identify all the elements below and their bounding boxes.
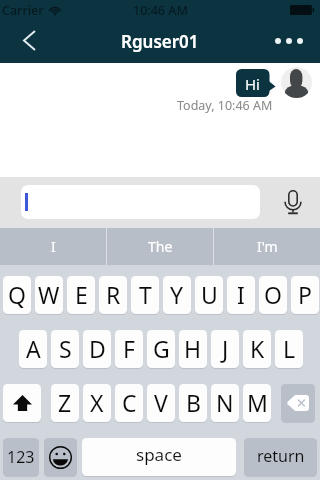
button[interactable]: L	[275, 330, 303, 368]
button[interactable]: I	[0, 228, 106, 265]
button[interactable]: More options	[266, 20, 320, 63]
button[interactable]: P	[291, 276, 319, 314]
staticText: I	[237, 279, 245, 310]
button[interactable]: The	[107, 228, 213, 265]
staticText: T	[139, 279, 152, 310]
staticText: 123	[7, 446, 35, 468]
staticText: B	[186, 387, 201, 418]
button[interactable]: Back	[0, 20, 52, 63]
button[interactable]: F	[115, 330, 143, 368]
staticText: The	[148, 237, 173, 256]
staticText: E	[75, 279, 88, 310]
button[interactable]: V	[147, 384, 175, 422]
staticText: O	[264, 279, 282, 310]
staticText: Y	[170, 279, 184, 310]
button[interactable]: I'm	[214, 228, 320, 265]
button[interactable]: G	[147, 330, 175, 368]
staticText: I'm	[257, 237, 278, 256]
button[interactable]: I	[227, 276, 255, 314]
button[interactable]: H	[179, 330, 207, 368]
staticText: space	[136, 443, 182, 466]
staticText: U	[201, 279, 218, 310]
staticText: 10:46 AM	[133, 2, 188, 19]
button[interactable]: space	[82, 438, 236, 476]
button[interactable]: Y	[163, 276, 191, 314]
button[interactable]: Backspace	[281, 384, 315, 422]
staticText: S	[59, 333, 72, 364]
button[interactable]: T	[131, 276, 159, 314]
button[interactable]: U	[195, 276, 223, 314]
staticText: H	[184, 333, 202, 364]
staticText: return	[257, 445, 305, 467]
button[interactable]: J	[211, 330, 239, 368]
button[interactable]: B	[179, 384, 207, 422]
button[interactable]: M	[243, 384, 271, 422]
staticText: K	[250, 333, 265, 364]
staticText: Q	[8, 279, 26, 310]
staticText: R	[106, 279, 121, 310]
button[interactable]: Q	[3, 276, 31, 314]
button[interactable]: N	[211, 384, 239, 422]
staticText: J	[222, 333, 229, 364]
staticText: N	[216, 387, 234, 418]
button[interactable]: R	[99, 276, 127, 314]
staticText: F	[123, 333, 135, 364]
button[interactable]: return	[244, 438, 317, 476]
staticText: D	[89, 333, 106, 364]
button[interactable]: K	[243, 330, 271, 368]
button[interactable]: D	[83, 330, 111, 368]
button[interactable]: A	[19, 330, 47, 368]
staticText: Today, 10:46 AM	[177, 97, 273, 114]
button[interactable]	[21, 185, 260, 219]
staticText: V	[154, 387, 168, 418]
staticText: P	[298, 279, 312, 310]
button[interactable]: Shift	[3, 384, 41, 422]
staticText: A	[26, 333, 41, 364]
staticText: W	[38, 279, 60, 310]
button[interactable]: S	[51, 330, 79, 368]
button[interactable]: O	[259, 276, 287, 314]
button[interactable]: Emoji	[44, 438, 77, 476]
button[interactable]: 123	[3, 438, 39, 476]
staticText: L	[283, 333, 296, 364]
button[interactable]: C	[115, 384, 143, 422]
button[interactable]: Z	[51, 384, 79, 422]
staticText: Carrier	[2, 2, 44, 19]
button[interactable]: Voice input	[276, 177, 310, 228]
staticText: G	[153, 333, 170, 364]
button[interactable]: W	[35, 276, 63, 314]
staticText: Z	[58, 387, 72, 418]
button[interactable]: E	[67, 276, 95, 314]
staticText: I	[51, 237, 56, 256]
staticText: C	[122, 387, 137, 418]
staticText: M	[247, 387, 268, 418]
button[interactable]: X	[83, 384, 111, 422]
staticText: X	[90, 387, 104, 418]
staticText: Rguser01	[121, 30, 199, 53]
staticText: Hi	[245, 74, 260, 94]
